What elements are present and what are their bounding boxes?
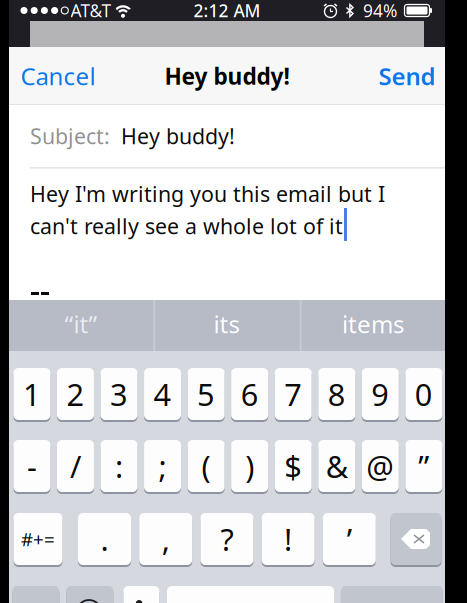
button[interactable]: its xyxy=(154,298,299,349)
staticText: 94% xyxy=(363,0,397,22)
staticText: , xyxy=(162,519,170,559)
staticText: Cancel xyxy=(20,60,95,92)
button[interactable]: 1 xyxy=(13,368,50,422)
staticText: Send xyxy=(378,60,435,92)
button[interactable]: , xyxy=(139,513,192,567)
button[interactable]: 3 xyxy=(100,368,137,422)
staticText: 1 xyxy=(23,374,41,414)
staticText: & xyxy=(326,446,348,486)
staticText: 5 xyxy=(197,374,215,414)
button[interactable]: items xyxy=(301,298,445,349)
button[interactable]: 2 xyxy=(57,368,94,422)
button[interactable]: ; xyxy=(144,440,181,494)
staticText: 2:12 AM xyxy=(193,0,260,22)
button[interactable]: $ xyxy=(275,440,312,494)
button[interactable]: & xyxy=(318,440,355,494)
staticText: . xyxy=(100,519,108,559)
button[interactable]: ) xyxy=(231,440,268,494)
button[interactable]: “it” xyxy=(9,298,153,349)
button[interactable]: / xyxy=(57,440,94,494)
staticText: ’ xyxy=(347,519,352,559)
staticText: its xyxy=(213,308,239,340)
staticText: Hey buddy! xyxy=(164,61,289,91)
button[interactable]: ? xyxy=(200,513,253,567)
staticText: - xyxy=(27,446,37,486)
button[interactable]: Next keyboard xyxy=(66,586,113,603)
staticText: 6 xyxy=(241,374,259,414)
staticText: “it” xyxy=(64,308,97,340)
staticText: ) xyxy=(245,446,254,486)
staticText: 8 xyxy=(328,374,346,414)
button[interactable]: ! xyxy=(262,513,315,567)
staticText: 2 xyxy=(66,374,84,414)
staticText: Subject: xyxy=(30,122,110,150)
staticText: AT&T xyxy=(70,0,111,22)
staticText: / xyxy=(70,446,81,486)
button[interactable]: @ xyxy=(362,440,399,494)
staticText: ? xyxy=(220,519,233,559)
staticText: 4 xyxy=(153,374,171,414)
staticText: ” xyxy=(418,446,429,486)
staticText: @ xyxy=(366,446,394,486)
staticText: can't really see a whole lot of it xyxy=(30,212,343,240)
button[interactable]: 7 xyxy=(275,368,312,422)
button[interactable]: 6 xyxy=(231,368,268,422)
staticText: $ xyxy=(284,446,302,486)
staticText: : xyxy=(115,446,123,486)
staticText: #+= xyxy=(21,527,55,551)
button[interactable]: 9 xyxy=(362,368,399,422)
staticText: 7 xyxy=(284,374,302,414)
staticText: 3 xyxy=(110,374,128,414)
button[interactable]: - xyxy=(13,440,50,494)
button[interactable]: 8 xyxy=(318,368,355,422)
button[interactable]: Delete xyxy=(390,513,441,567)
button[interactable]: . xyxy=(78,513,131,567)
staticText: 0 xyxy=(415,374,433,414)
staticText: items xyxy=(342,308,404,340)
button[interactable]: : xyxy=(100,440,137,494)
staticText: ; xyxy=(158,446,166,486)
button[interactable]: Dictate xyxy=(123,586,159,603)
button[interactable]: 5 xyxy=(188,368,225,422)
button[interactable]: 4 xyxy=(144,368,181,422)
staticText: Hey I'm writing you this email but I xyxy=(30,179,385,208)
button[interactable]: ” xyxy=(405,440,442,494)
staticText: ! xyxy=(284,519,292,559)
staticText: ( xyxy=(202,446,211,486)
button[interactable]: Symbols xyxy=(13,513,62,567)
button[interactable]: Cancel xyxy=(10,48,105,104)
button[interactable]: ’ xyxy=(323,513,376,567)
staticText: Hey buddy! xyxy=(121,122,235,150)
staticText: 9 xyxy=(371,374,389,414)
button[interactable]: 0 xyxy=(405,368,442,422)
button[interactable]: ( xyxy=(188,440,225,494)
button[interactable]: Send xyxy=(368,48,445,104)
